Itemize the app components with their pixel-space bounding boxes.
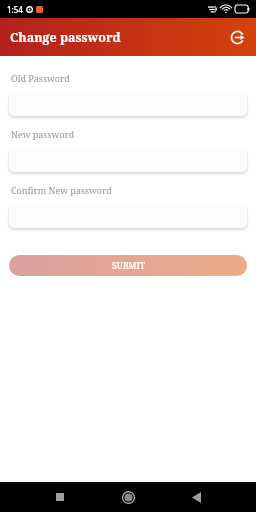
staticText: New password [11,128,75,140]
button[interactable]: Back [184,485,208,509]
button[interactable]: Home [116,485,140,509]
button[interactable]: Log out [224,24,250,50]
staticText: Change password [10,29,121,46]
staticText: Old Password [11,72,70,84]
staticText: Confirm New password [11,184,112,196]
button[interactable]: Recent apps [48,485,72,509]
staticText: 1:54 [7,4,23,15]
staticText: SUBMIT [112,260,145,272]
button[interactable]: SUBMIT [9,255,247,276]
